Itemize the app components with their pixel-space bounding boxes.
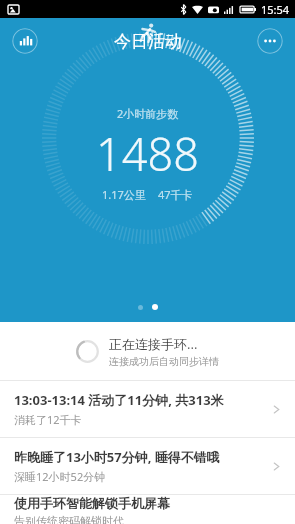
staticText: 消耗了12千卡 [14, 412, 82, 427]
staticText: 今日活动 [114, 31, 182, 52]
button[interactable]: 使用手环智能解锁手机屏幕 [0, 495, 295, 524]
staticText: 使用手环智能解锁手机屏幕 [14, 495, 170, 511]
button[interactable]: 正在连接手环... [0, 322, 295, 380]
staticText: 昨晚睡了13小时57分钟, 睡得不错哦 [14, 448, 220, 466]
staticText: 15:54 [261, 2, 290, 17]
button[interactable]: 昨晚睡了13小时57分钟, 睡得不错哦 [0, 438, 295, 494]
button[interactable]: More options [257, 28, 283, 54]
other: Activity [138, 23, 158, 43]
staticText: 告别传统密码解锁时代 [14, 514, 124, 524]
staticText: 1488 [96, 123, 199, 184]
button[interactable]: 13:03-13:14 活动了11分钟, 共313米 [0, 381, 295, 437]
staticText: 深睡12小时52分钟 [14, 469, 106, 484]
staticText: 正在连接手环... [109, 335, 198, 353]
staticText: 47千卡 [158, 187, 193, 202]
staticText: 1.17公里 [102, 187, 146, 202]
button[interactable]: Statistics [12, 28, 38, 54]
staticText: 2小时前步数 [117, 106, 179, 121]
staticText: 连接成功后自动同步详情 [109, 355, 219, 368]
staticText: 13:03-13:14 活动了11分钟, 共313米 [14, 391, 224, 409]
